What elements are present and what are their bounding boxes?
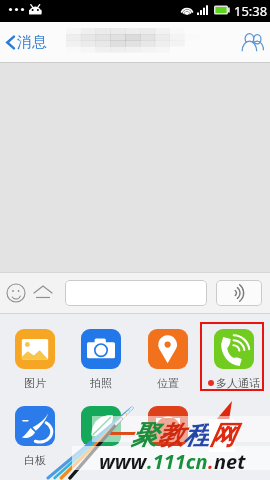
button[interactable]: 白板 — [1, 406, 69, 467]
staticText: 教 — [157, 419, 183, 452]
button[interactable] — [134, 406, 202, 453]
staticText: 程 — [183, 419, 209, 452]
button[interactable]: 位置 — [134, 329, 202, 390]
staticText: . — [208, 448, 214, 475]
staticText: www — [99, 448, 147, 475]
button[interactable]: Switch input — [33, 285, 53, 301]
staticText: 拍照 — [90, 376, 112, 390]
staticText: 消息 — [17, 33, 47, 52]
staticText: 聚 — [131, 419, 157, 452]
button[interactable]: Voice message — [216, 280, 262, 306]
button[interactable]: Contacts — [239, 32, 265, 54]
staticText: 图片 — [24, 376, 46, 390]
staticText: 位置 — [157, 376, 179, 390]
button[interactable]: Emoji — [6, 283, 26, 303]
staticText: .111cn — [147, 448, 208, 475]
staticText: 白板 — [24, 453, 46, 467]
button[interactable]: 多人通话 — [200, 329, 268, 390]
button[interactable]: 消息 — [0, 26, 57, 59]
staticText: net — [214, 448, 246, 475]
button[interactable]: 拍照 — [67, 329, 135, 390]
staticText: 网 — [209, 419, 235, 452]
staticText: 一 — [105, 419, 131, 452]
button[interactable]: Message input — [65, 280, 207, 306]
button[interactable]: 图片 — [1, 329, 69, 390]
button[interactable] — [67, 406, 135, 453]
staticText: 多人通话 — [216, 376, 260, 390]
staticText: 15:38 — [234, 2, 268, 20]
